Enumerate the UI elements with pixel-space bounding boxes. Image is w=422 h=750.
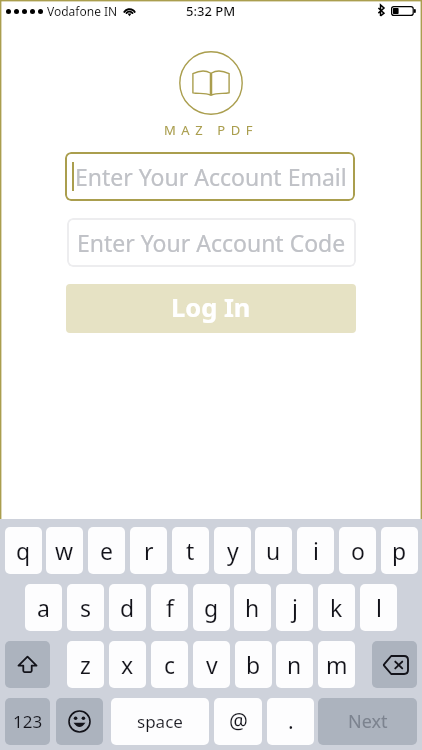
button[interactable]: h bbox=[234, 584, 271, 631]
button[interactable]: b bbox=[235, 641, 272, 688]
staticText: 5:32 PM bbox=[186, 2, 236, 20]
button[interactable]: Log In bbox=[66, 284, 356, 333]
button[interactable]: space bbox=[111, 698, 209, 745]
button[interactable]: r bbox=[130, 527, 167, 574]
staticText: space bbox=[137, 710, 183, 733]
staticText: r bbox=[144, 535, 154, 566]
button[interactable]: o bbox=[339, 527, 376, 574]
staticText: k bbox=[330, 592, 343, 623]
staticText: s bbox=[80, 592, 92, 623]
button[interactable]: p bbox=[381, 527, 418, 574]
staticText: x bbox=[121, 649, 134, 680]
button[interactable]: . bbox=[267, 698, 314, 745]
staticText: q bbox=[16, 535, 31, 566]
button[interactable]: l bbox=[360, 584, 397, 631]
staticText: Vodafone IN bbox=[47, 3, 118, 19]
staticText: p bbox=[392, 535, 407, 566]
button[interactable]: y bbox=[214, 527, 251, 574]
button[interactable]: Next bbox=[318, 698, 417, 745]
button[interactable]: Enter Your Account Code bbox=[67, 218, 356, 267]
staticText: t bbox=[186, 535, 195, 566]
staticText: MAZ PDF bbox=[0, 121, 422, 139]
staticText: Enter Your Account Email bbox=[75, 161, 347, 192]
button[interactable]: e bbox=[88, 527, 125, 574]
staticText: d bbox=[120, 592, 135, 623]
staticText: c bbox=[164, 649, 176, 680]
button[interactable]: Backspace bbox=[372, 641, 417, 688]
button[interactable]: n bbox=[276, 641, 313, 688]
staticText: @ bbox=[229, 707, 248, 736]
staticText: b bbox=[246, 649, 261, 680]
button[interactable]: u bbox=[255, 527, 292, 574]
staticText: n bbox=[287, 649, 302, 680]
staticText: l bbox=[376, 592, 382, 623]
button[interactable]: Enter Your Account Email bbox=[65, 152, 355, 201]
staticText: y bbox=[227, 535, 239, 566]
button[interactable]: g bbox=[193, 584, 230, 631]
staticText: h bbox=[245, 592, 260, 623]
button[interactable]: j bbox=[276, 584, 313, 631]
staticText: 123 bbox=[13, 710, 43, 733]
staticText: m bbox=[326, 649, 348, 680]
staticText: j bbox=[292, 592, 298, 623]
staticText: e bbox=[100, 535, 113, 566]
staticText: a bbox=[37, 592, 50, 623]
staticText: i bbox=[313, 535, 319, 566]
staticText: Next bbox=[348, 709, 388, 734]
button[interactable]: Emoji keyboard bbox=[56, 698, 103, 745]
button[interactable]: t bbox=[172, 527, 209, 574]
button[interactable]: z bbox=[67, 641, 104, 688]
button[interactable]: k bbox=[318, 584, 355, 631]
button[interactable]: m bbox=[318, 641, 355, 688]
button[interactable]: s bbox=[67, 584, 104, 631]
button[interactable]: 123 bbox=[5, 698, 50, 745]
button[interactable]: c bbox=[151, 641, 188, 688]
staticText: Enter Your Account Code bbox=[77, 227, 346, 258]
staticText: z bbox=[80, 649, 91, 680]
staticText: o bbox=[351, 535, 365, 566]
button[interactable]: a bbox=[25, 584, 62, 631]
button[interactable]: v bbox=[193, 641, 230, 688]
button[interactable]: x bbox=[109, 641, 146, 688]
button[interactable]: q bbox=[5, 527, 42, 574]
button[interactable]: f bbox=[151, 584, 188, 631]
staticText: w bbox=[55, 535, 74, 566]
staticText: Log In bbox=[171, 290, 251, 325]
staticText: v bbox=[206, 649, 218, 680]
button[interactable]: d bbox=[109, 584, 146, 631]
button[interactable]: w bbox=[46, 527, 83, 574]
staticText: u bbox=[266, 535, 281, 566]
staticText: g bbox=[204, 592, 219, 623]
staticText: f bbox=[166, 592, 174, 623]
button[interactable]: Shift bbox=[5, 641, 50, 688]
button[interactable]: i bbox=[297, 527, 334, 574]
staticText: . bbox=[288, 707, 294, 736]
button[interactable]: @ bbox=[214, 698, 262, 745]
